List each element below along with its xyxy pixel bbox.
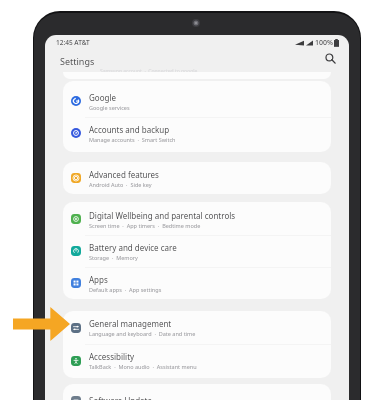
other: Pointer arrow [13, 307, 70, 341]
button[interactable]: Software Update [63, 384, 331, 400]
staticText: Accessibility [89, 351, 135, 362]
button[interactable]: Advanced features [63, 162, 331, 194]
staticText: TalkBack · Mono audio · Assistant menu [89, 363, 197, 370]
staticText: 100% [315, 38, 333, 48]
staticText: Advanced features [89, 169, 159, 180]
staticText: 12:45 AT&T [56, 38, 90, 47]
staticText: Accounts and backup [89, 124, 170, 135]
button[interactable]: General management [63, 311, 331, 344]
staticText: Battery and device care [89, 242, 177, 253]
staticText: General management [89, 318, 172, 329]
staticText: Default apps · App settings [89, 286, 162, 293]
button[interactable]: Digital Wellbeing and parental controls [63, 203, 331, 235]
staticText: Apps [89, 274, 108, 285]
staticText: Storage · Memory [89, 254, 138, 261]
staticText: Google [89, 92, 116, 103]
staticText: Samsung account · Connected to google [100, 68, 198, 75]
staticText: Screen time · App timers · Bedtime mode [89, 222, 201, 229]
button[interactable]: Accounts and backup [63, 117, 331, 149]
staticText: Android Auto · Side key [89, 181, 152, 188]
button[interactable]: Google [63, 85, 331, 117]
staticText: Digital Wellbeing and parental controls [89, 210, 236, 221]
staticText: Settings [60, 55, 95, 67]
staticText: Software Update [89, 395, 152, 400]
staticText: Manage accounts · Smart Switch [89, 136, 176, 143]
staticText: Google services [89, 104, 130, 111]
button[interactable]: Apps [63, 267, 331, 299]
staticText: Language and keyboard · Date and time [89, 330, 196, 337]
button[interactable]: Search [322, 50, 339, 67]
button[interactable]: Battery and device care [63, 235, 331, 267]
button[interactable]: Accessibility [63, 344, 331, 377]
